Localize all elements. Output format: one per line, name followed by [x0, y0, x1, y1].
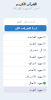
button[interactable]: سورة الأنعام [3, 67, 47, 73]
button[interactable]: ابدأ القراءة الآن [4, 25, 46, 31]
staticText: سورة الأنعام [28, 68, 42, 72]
staticText: سورة التوبة [29, 88, 42, 91]
button[interactable]: سورة الأعراف [3, 73, 47, 80]
button[interactable]: سورة النساء [3, 54, 47, 60]
button[interactable]: آل عمران [3, 47, 47, 53]
button[interactable]: سورة الفاتحة [3, 34, 47, 40]
staticText: القرآن الكريم [15, 2, 36, 6]
staticText: سورة النساء [29, 55, 42, 58]
staticText: سورة المائدة [28, 62, 42, 65]
button[interactable]: سورة البقرة [3, 40, 47, 47]
staticText: آل عمران [29, 48, 42, 52]
staticText: ابدأ القراءة الآن [14, 27, 36, 30]
staticText: سورة الفاتحة [27, 35, 42, 39]
staticText: سورة البقرة [29, 42, 42, 45]
button[interactable]: سورة الأنفال [3, 80, 47, 86]
staticText: اختر السورة للقراءة [12, 6, 39, 10]
staticText: سورة الأنفال [28, 81, 42, 85]
button[interactable]: سورة المائدة [3, 60, 47, 66]
staticText: البحث في السور [16, 20, 35, 23]
button[interactable]: سورة التوبة [3, 87, 47, 93]
staticText: سورة الأعراف [25, 75, 42, 78]
